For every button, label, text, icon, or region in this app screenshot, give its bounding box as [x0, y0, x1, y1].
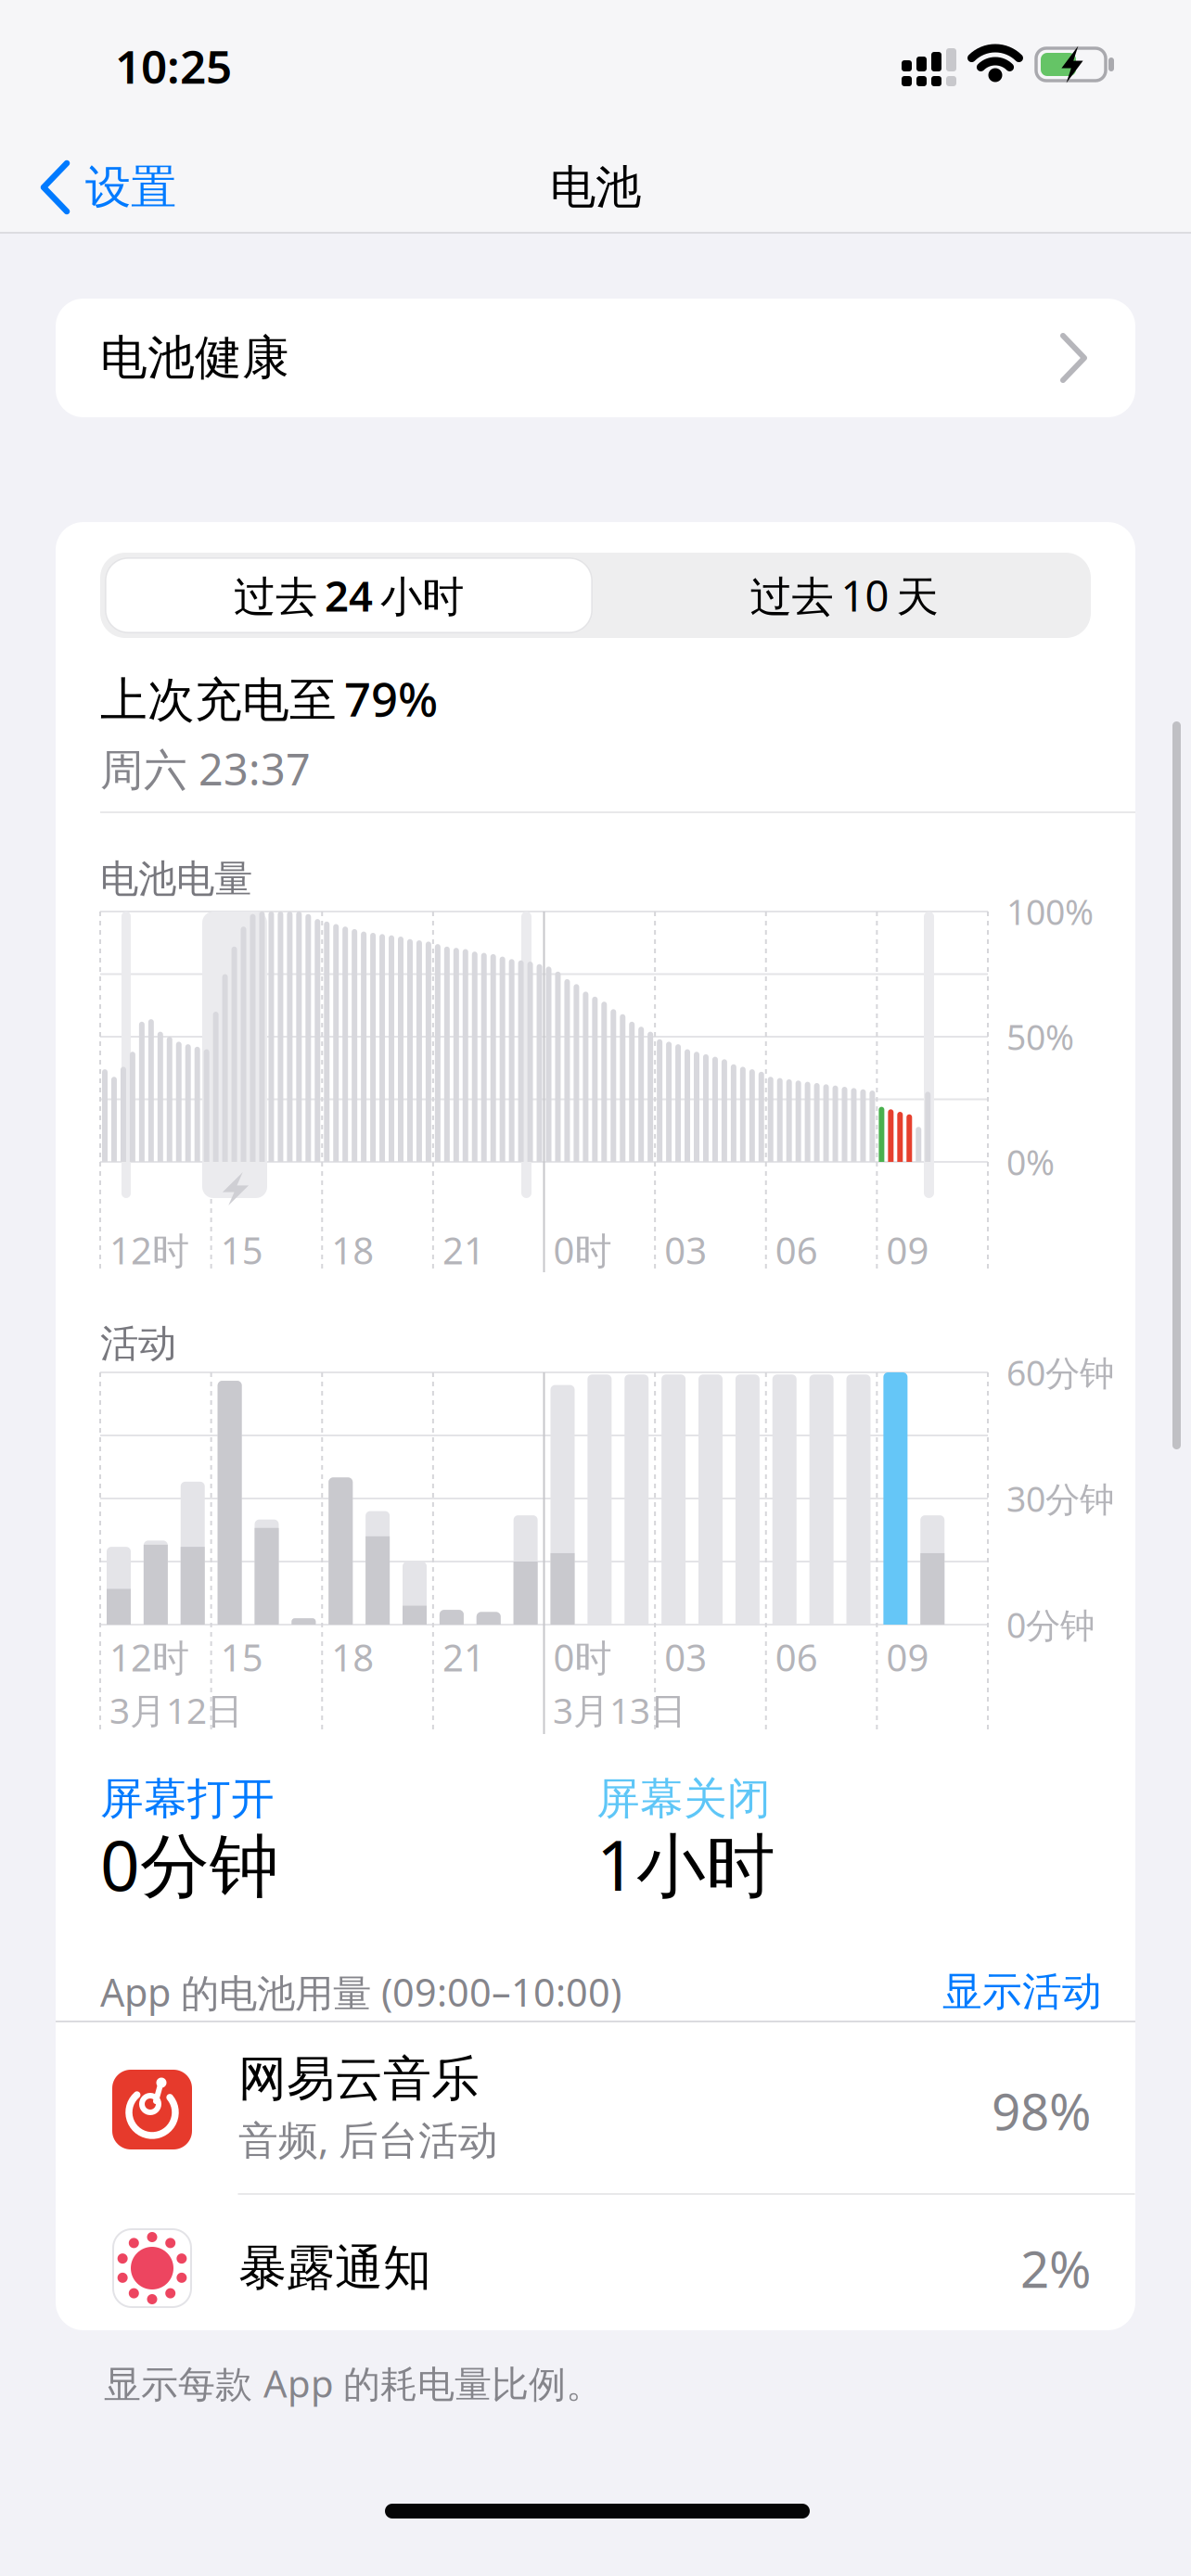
button[interactable]: 网易云音乐 — [56, 2022, 1135, 2195]
staticText: 电池 — [550, 159, 641, 215]
staticText: 0分钟 — [1006, 1602, 1095, 1648]
staticText: 1小时 — [596, 1818, 775, 1910]
button[interactable]: 过去 10 天 — [603, 555, 1085, 635]
staticText: 100% — [1006, 889, 1094, 935]
staticText: 06 — [775, 1632, 818, 1682]
button[interactable]: 返回设置 — [39, 159, 176, 216]
staticText: App 的电池用量 (09:00–10:00) — [100, 1966, 621, 2017]
staticText: 0分钟 — [100, 1818, 279, 1910]
staticText: 21 — [442, 1225, 485, 1275]
staticText: 12时 — [109, 1632, 189, 1682]
staticText: 03 — [664, 1225, 707, 1275]
staticText: 过去 24 小时 — [234, 567, 464, 623]
button[interactable]: 显示活动 — [861, 1968, 1102, 2016]
staticText: 暴露通知 — [238, 2239, 431, 2298]
staticText: 屏幕打开 — [100, 1772, 275, 1825]
staticText: 50% — [1006, 1014, 1074, 1060]
staticText: 网易云音乐 — [238, 2049, 480, 2109]
staticText: 显示活动 — [942, 1968, 1102, 2016]
staticText: 0% — [1006, 1139, 1055, 1185]
staticText: 12时 — [109, 1225, 189, 1275]
staticText: 上次充电至 79% — [100, 667, 438, 729]
staticText: 15 — [220, 1632, 263, 1682]
staticText: 电池电量 — [100, 856, 252, 903]
staticText: 设置 — [85, 159, 176, 215]
staticText: 音频, 后台活动 — [238, 2113, 498, 2166]
staticText: 0时 — [553, 1632, 612, 1682]
staticText: 过去 10 天 — [750, 567, 938, 623]
staticText: 18 — [331, 1225, 374, 1275]
staticText: 15 — [220, 1225, 263, 1275]
button[interactable]: 屏幕打开 — [100, 1766, 527, 1906]
staticText: 周六 23:37 — [100, 740, 311, 797]
staticText: 60分钟 — [1006, 1349, 1114, 1395]
button[interactable]: 屏幕关闭 — [596, 1766, 1023, 1906]
staticText: 3月12日 — [109, 1686, 243, 1734]
button[interactable]: 过去 24 小时 — [106, 558, 592, 632]
staticText: 06 — [775, 1225, 818, 1275]
staticText: 21 — [442, 1632, 485, 1682]
staticText: 03 — [664, 1632, 707, 1682]
staticText: 2% — [1020, 2234, 1091, 2302]
staticText: 10:25 — [115, 35, 232, 96]
button[interactable]: 电池健康 — [56, 299, 1135, 417]
staticText: 09 — [886, 1632, 929, 1682]
staticText: 98% — [992, 2077, 1091, 2144]
staticText: 显示每款 App 的耗电量比例。 — [104, 2358, 603, 2408]
button[interactable]: 暴露通知 — [56, 2195, 1135, 2330]
staticText: 屏幕关闭 — [596, 1772, 771, 1825]
staticText: 30分钟 — [1006, 1475, 1114, 1521]
staticText: 3月13日 — [553, 1686, 686, 1734]
staticText: 18 — [331, 1632, 374, 1682]
staticText: 09 — [886, 1225, 929, 1275]
staticText: 活动 — [100, 1320, 176, 1367]
staticText: 0时 — [553, 1225, 612, 1275]
staticText: 电池健康 — [100, 329, 289, 387]
